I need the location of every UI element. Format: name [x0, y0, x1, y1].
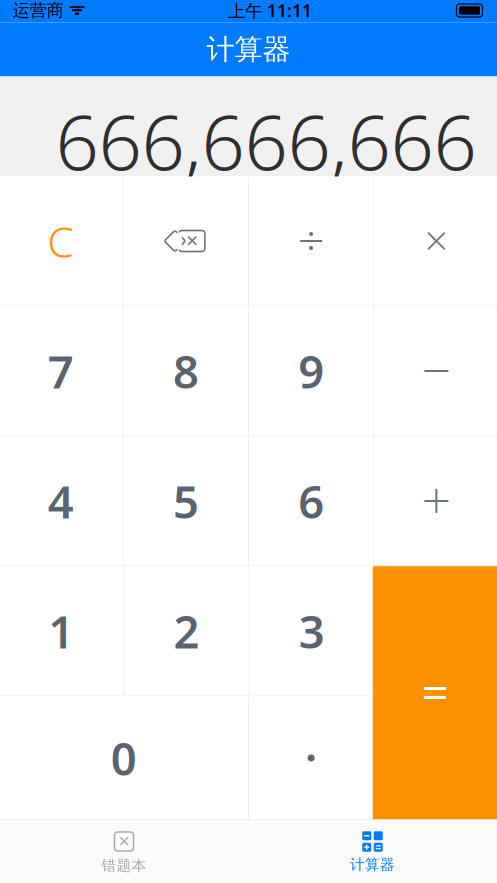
staticText: 上午 11:11 [228, 0, 312, 22]
staticText: 计算器 [206, 32, 290, 67]
button[interactable]: 1 [0, 566, 123, 695]
staticText: 计算器 [350, 855, 395, 873]
staticText: C [47, 213, 74, 269]
button[interactable]: Equals [373, 566, 497, 819]
staticText: 4 [48, 471, 74, 531]
button[interactable]: 4 [0, 436, 123, 565]
staticText: 0 [111, 728, 137, 788]
button[interactable]: 2 [124, 566, 248, 695]
button[interactable]: Multiply [374, 176, 497, 305]
staticText: 9 [298, 341, 324, 401]
staticText: 6 [298, 471, 324, 531]
staticText: 666,666,666 [55, 90, 476, 191]
staticText: 7 [48, 341, 74, 401]
button[interactable]: 5 [124, 436, 248, 565]
staticText: 错题本 [101, 856, 146, 874]
button[interactable]: 3 [249, 566, 374, 695]
button[interactable]: 6 [249, 436, 373, 565]
staticText: 3 [299, 601, 325, 661]
button[interactable]: 8 [124, 306, 248, 435]
staticText: 5 [173, 471, 199, 531]
button[interactable]: ✕ [0, 821, 248, 883]
button[interactable]: 0 [0, 696, 248, 819]
staticText: 运营商 [12, 0, 63, 21]
button[interactable]: Divide [249, 176, 373, 305]
button[interactable]: Minus [374, 306, 497, 435]
button[interactable]: Delete [124, 176, 248, 305]
button[interactable]: 计算器 [248, 821, 497, 883]
staticText: 8 [173, 341, 199, 401]
staticText: 2 [173, 601, 199, 661]
staticText: ✕ [118, 833, 130, 850]
button[interactable]: Decimal point [249, 696, 373, 819]
button[interactable]: Clear [0, 176, 123, 305]
staticText: 1 [48, 601, 74, 661]
button[interactable]: 9 [249, 306, 373, 435]
button[interactable]: Plus [374, 436, 497, 565]
button[interactable]: 7 [0, 306, 123, 435]
staticText: ✕ [185, 232, 198, 250]
